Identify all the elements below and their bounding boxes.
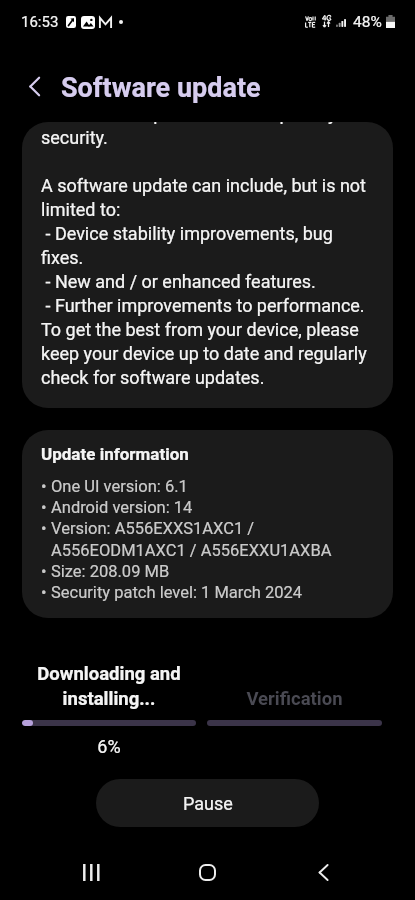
staticText: Software update bbox=[61, 72, 261, 104]
staticText: • bbox=[41, 519, 47, 538]
button[interactable]: Navigate up bbox=[17, 69, 51, 103]
staticText: • bbox=[41, 477, 47, 496]
staticText: Verification bbox=[207, 688, 382, 710]
staticText: Version: A556EXXS1AXC1 / A556EODM1AXC1 /… bbox=[51, 519, 393, 560]
staticText: Security patch level: 1 March 2024 bbox=[51, 583, 303, 602]
staticText: 48% bbox=[353, 13, 382, 31]
staticText: 6% bbox=[22, 736, 196, 757]
button[interactable]: Pause bbox=[96, 779, 319, 827]
staticText: Downloading and installing... bbox=[22, 663, 196, 710]
staticText: Size: 208.09 MB bbox=[51, 562, 170, 581]
staticText: • bbox=[41, 583, 47, 602]
staticText: • bbox=[41, 498, 47, 517]
staticText: Pause bbox=[183, 793, 233, 814]
button[interactable]: Recent apps bbox=[43, 844, 139, 900]
staticText: This update improves your device's stabi… bbox=[41, 122, 374, 388]
staticText: 16:53 bbox=[21, 13, 59, 31]
staticText: Update information bbox=[41, 444, 189, 464]
button[interactable]: Back bbox=[275, 844, 371, 900]
staticText: • bbox=[41, 562, 47, 581]
button[interactable]: Home bbox=[159, 844, 255, 900]
staticText: Android version: 14 bbox=[51, 498, 193, 517]
staticText: One UI version: 6.1 bbox=[51, 477, 188, 496]
